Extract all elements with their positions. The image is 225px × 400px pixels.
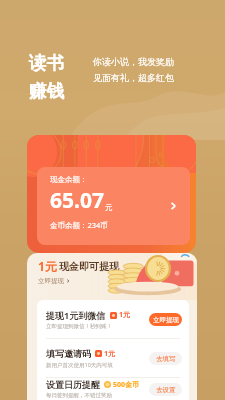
staticText: 立即提现 [38, 277, 64, 285]
staticText: 你读小说，我发奖励 [93, 56, 174, 67]
staticText: 1元 [104, 349, 116, 359]
staticText: 现金余额： [50, 175, 88, 184]
staticText: 现金即可提现 [59, 260, 119, 273]
button[interactable]: 去设置 [149, 383, 182, 396]
staticText: 去设置 [156, 386, 176, 394]
button[interactable]: 填写邀请码 [46, 339, 182, 377]
staticText: 设置日历提醒 [46, 379, 100, 390]
staticText: 金币余额：234币 [50, 220, 108, 230]
staticText: 新用户首次使用10天内可填 [46, 361, 113, 369]
staticText: 每日签到提醒，不错过奖励 [46, 392, 112, 399]
staticText: 提现1元到微信 [46, 309, 106, 321]
button[interactable]: 去填写 [149, 352, 182, 365]
button[interactable]: 提现1元到微信 [46, 300, 182, 338]
staticText: 去填写 [156, 355, 176, 363]
button[interactable]: 立即提现 [38, 277, 70, 285]
staticText: 见面有礼，超多红包 [93, 72, 174, 83]
button[interactable]: 立即提现 [149, 313, 182, 326]
staticText: 立即提现到微信！秒到账！ [46, 323, 112, 330]
button[interactable]: 设置日历提醒 [46, 378, 182, 400]
staticText: 元 [105, 203, 113, 212]
staticText: 500金币 [113, 380, 140, 390]
other: 查看余额详情 [166, 199, 180, 213]
button[interactable]: 现金余额： [27, 135, 196, 253]
staticText: 赚钱 [29, 80, 64, 102]
staticText: 填写邀请码 [46, 348, 91, 359]
staticText: 65.07 [50, 186, 104, 215]
staticText: 1元 [119, 310, 131, 320]
staticText: 1元 [38, 258, 57, 274]
staticText: 立即提现 [153, 316, 179, 324]
staticText: 读书 [29, 52, 64, 74]
